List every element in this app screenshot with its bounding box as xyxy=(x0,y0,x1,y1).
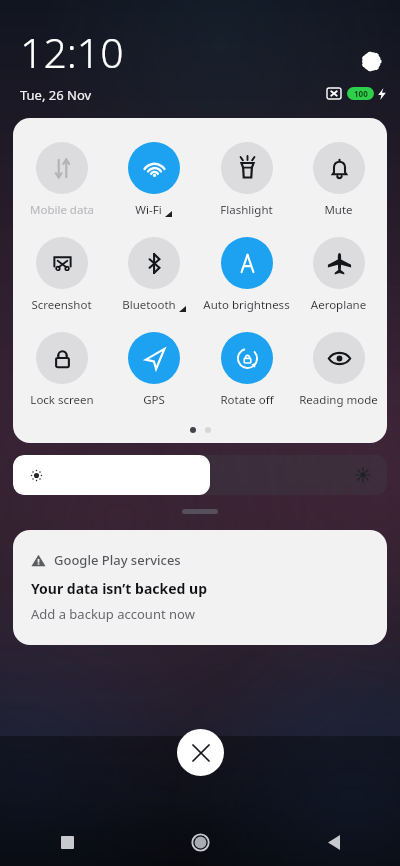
staticText: Tue, 26 Nov xyxy=(20,86,92,104)
staticText: Reading mode xyxy=(299,392,378,408)
staticText: 100 xyxy=(354,88,368,99)
staticText: Your data isn’t backed up xyxy=(31,579,208,598)
button[interactable]: Brightness xyxy=(13,455,387,495)
staticText: Aeroplane mode xyxy=(294,297,383,313)
button[interactable]: Bluetooth xyxy=(109,237,198,313)
staticText: Google Play services xyxy=(54,551,181,569)
button[interactable]: Mobile data xyxy=(17,142,106,218)
staticText: Bluetooth xyxy=(122,297,176,313)
button[interactable]: Aeroplane mode xyxy=(294,237,383,313)
button[interactable]: Wi-Fi xyxy=(109,142,198,218)
button[interactable]: Settings xyxy=(354,44,388,78)
button[interactable]: GPS xyxy=(109,332,198,408)
button[interactable]: Lock screen xyxy=(17,332,106,408)
staticText: 12:10 xyxy=(20,24,124,80)
button[interactable]: Back xyxy=(267,818,400,866)
button[interactable]: Home xyxy=(134,818,267,866)
staticText: Mobile data xyxy=(30,202,94,218)
staticText: Flashlight xyxy=(220,202,273,218)
button[interactable]: Rotate off xyxy=(202,332,291,408)
staticText: Mute xyxy=(324,202,353,218)
button[interactable]: Google Play services xyxy=(13,530,387,645)
button[interactable]: Auto brightness xyxy=(202,237,291,313)
staticText: Add a backup account now xyxy=(31,605,195,623)
button[interactable]: Recent apps xyxy=(0,818,134,866)
staticText: Lock screen xyxy=(30,392,94,408)
staticText: Screenshot xyxy=(31,297,92,313)
button[interactable]: Close xyxy=(177,729,224,776)
staticText: Wi-Fi xyxy=(135,202,162,218)
staticText: Rotate off xyxy=(220,392,274,408)
button[interactable]: Mute xyxy=(294,142,383,218)
button[interactable]: Reading mode xyxy=(294,332,383,408)
button[interactable]: Flashlight xyxy=(202,142,291,218)
staticText: Auto brightness xyxy=(203,297,290,313)
button[interactable]: Screenshot xyxy=(17,237,106,313)
staticText: GPS xyxy=(143,392,165,408)
